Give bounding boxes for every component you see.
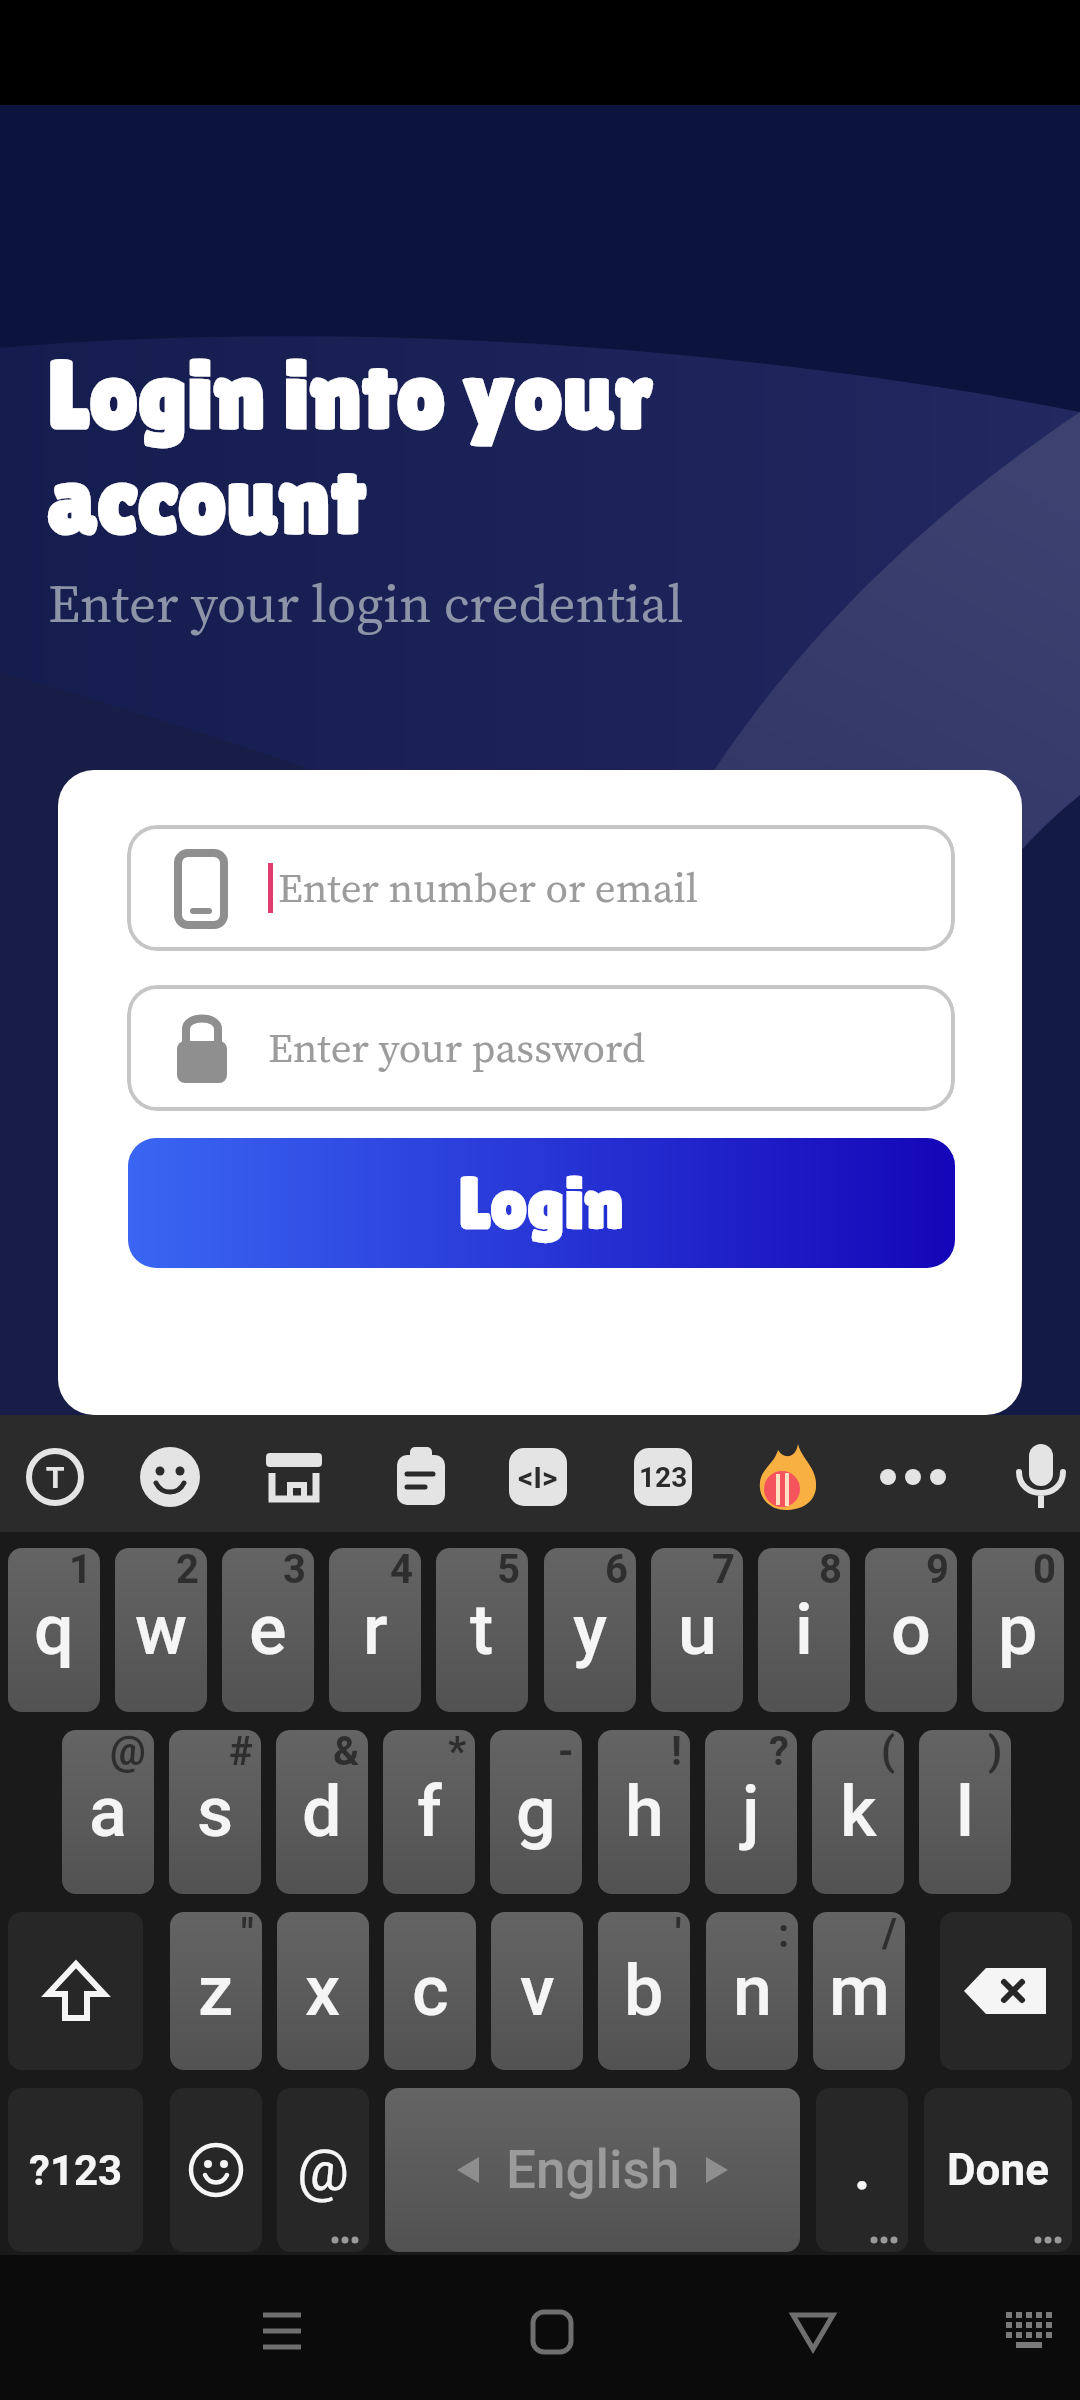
- button[interactable]: [758, 1444, 820, 1510]
- button[interactable]: ?123: [8, 2088, 143, 2252]
- staticText: ': [675, 1912, 682, 1957]
- staticText: ?123: [29, 2146, 123, 2195]
- staticText: e: [249, 1589, 287, 1671]
- staticText: j: [742, 1771, 760, 1853]
- staticText: @: [110, 1730, 146, 1775]
- staticText: x: [305, 1950, 341, 2032]
- button[interactable]: u: [651, 1548, 743, 1712]
- staticText: account: [48, 445, 366, 554]
- button[interactable]: T: [25, 1447, 85, 1507]
- staticText: t: [470, 1589, 494, 1671]
- button[interactable]: [783, 2302, 843, 2362]
- button[interactable]: g: [490, 1730, 582, 1894]
- button[interactable]: k: [812, 1730, 904, 1894]
- button[interactable]: f: [383, 1730, 475, 1894]
- staticText: 1: [69, 1548, 92, 1593]
- staticText: q: [34, 1589, 74, 1671]
- button[interactable]: [170, 2088, 262, 2252]
- button[interactable]: [878, 1462, 948, 1492]
- button[interactable]: .: [816, 2088, 908, 2252]
- staticText: English: [506, 2139, 680, 2201]
- staticText: ): [988, 1730, 1003, 1775]
- button[interactable]: @: [277, 2088, 369, 2252]
- button[interactable]: English: [385, 2088, 800, 2252]
- button[interactable]: t: [436, 1548, 528, 1712]
- button[interactable]: [391, 1447, 451, 1507]
- button[interactable]: Enter number or email: [127, 825, 955, 951]
- staticText: y: [573, 1589, 608, 1671]
- button[interactable]: q: [8, 1548, 100, 1712]
- staticText: :: [778, 1912, 790, 1957]
- staticText: v: [520, 1950, 555, 2032]
- button[interactable]: d: [276, 1730, 368, 1894]
- staticText: /: [882, 1912, 897, 1957]
- button[interactable]: 123: [634, 1448, 692, 1506]
- staticText: a: [89, 1771, 127, 1853]
- staticText: *: [448, 1730, 467, 1775]
- staticText: f: [417, 1771, 442, 1853]
- button[interactable]: [252, 2302, 312, 2362]
- staticText: <I>: [518, 1460, 558, 1495]
- staticText: .: [854, 2137, 871, 2203]
- button[interactable]: z: [170, 1912, 262, 2070]
- staticText: m: [829, 1950, 890, 2032]
- button[interactable]: c: [384, 1912, 476, 2070]
- button[interactable]: [940, 1912, 1072, 2070]
- button[interactable]: Login: [128, 1138, 955, 1268]
- staticText: p: [998, 1589, 1038, 1671]
- staticText: o: [891, 1589, 931, 1671]
- button[interactable]: e: [222, 1548, 314, 1712]
- staticText: Enter your password: [268, 1020, 646, 1076]
- button[interactable]: Enter your password: [127, 985, 955, 1111]
- button[interactable]: [1012, 1442, 1070, 1512]
- staticText: w: [135, 1589, 188, 1671]
- button[interactable]: w: [115, 1548, 207, 1712]
- staticText: Login: [459, 1162, 624, 1244]
- button[interactable]: o: [865, 1548, 957, 1712]
- staticText: Done: [947, 2144, 1049, 2196]
- staticText: Login into your: [48, 340, 653, 449]
- staticText: Enter number or email: [278, 860, 699, 916]
- staticText: n: [733, 1950, 772, 2032]
- staticText: k: [840, 1771, 877, 1853]
- staticText: d: [302, 1771, 342, 1853]
- button[interactable]: l: [919, 1730, 1011, 1894]
- button[interactable]: b: [598, 1912, 690, 2070]
- button[interactable]: p: [972, 1548, 1064, 1712]
- staticText: ?: [769, 1730, 789, 1775]
- button[interactable]: [140, 1447, 200, 1507]
- staticText: -: [558, 1730, 574, 1775]
- staticText: 7: [712, 1548, 735, 1593]
- staticText: 9: [926, 1548, 949, 1593]
- button[interactable]: r: [329, 1548, 421, 1712]
- button[interactable]: <I>: [509, 1448, 567, 1506]
- staticText: c: [412, 1950, 449, 2032]
- button[interactable]: n: [706, 1912, 798, 2070]
- staticText: z: [198, 1950, 234, 2032]
- button[interactable]: h: [598, 1730, 690, 1894]
- button[interactable]: [522, 2302, 582, 2362]
- button[interactable]: [264, 1447, 324, 1507]
- button[interactable]: [1000, 2308, 1064, 2356]
- button[interactable]: i: [758, 1548, 850, 1712]
- staticText: #: [229, 1730, 253, 1775]
- staticText: (: [881, 1730, 896, 1775]
- staticText: 6: [605, 1548, 628, 1593]
- staticText: 5: [497, 1548, 520, 1593]
- button[interactable]: x: [277, 1912, 369, 2070]
- staticText: r: [363, 1589, 388, 1671]
- button[interactable]: j: [705, 1730, 797, 1894]
- staticText: s: [197, 1771, 234, 1853]
- button[interactable]: a: [62, 1730, 154, 1894]
- button[interactable]: [8, 1912, 143, 2070]
- button[interactable]: Done: [924, 2088, 1072, 2252]
- staticText: b: [624, 1950, 664, 2032]
- button[interactable]: v: [491, 1912, 583, 2070]
- staticText: !: [671, 1730, 682, 1775]
- button[interactable]: s: [169, 1730, 261, 1894]
- button[interactable]: m: [813, 1912, 905, 2070]
- button[interactable]: y: [544, 1548, 636, 1712]
- staticText: &: [333, 1730, 360, 1775]
- staticText: ": [241, 1912, 254, 1957]
